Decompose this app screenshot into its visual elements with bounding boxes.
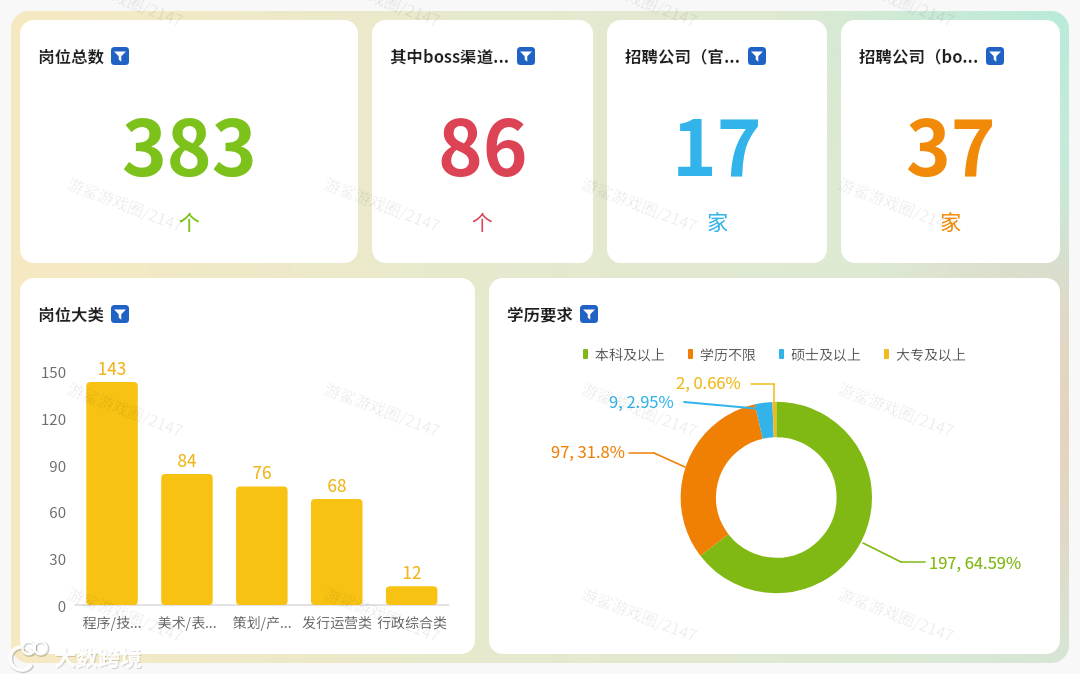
staticText: 86 [438, 88, 528, 198]
button[interactable]: 大专及以上 [884, 344, 966, 364]
staticText: 策划/产... [218, 612, 306, 632]
staticText: 发行运营类 [293, 612, 381, 632]
staticText: 游鲨游戏圈/2147 [836, 376, 958, 441]
staticText: 游鲨游戏圈/2147 [322, 171, 444, 236]
button[interactable]: Filter [580, 305, 598, 323]
staticText: 游鲨游戏圈/2147 [579, 171, 701, 236]
staticText: 美术/表... [143, 612, 231, 632]
staticText: 学历不限 [700, 344, 756, 364]
staticText: 150 [20, 361, 66, 383]
staticText: 17 [672, 88, 762, 198]
staticText: 家 [707, 206, 728, 236]
staticText: 37 [906, 88, 996, 198]
button[interactable]: 学历不限 [688, 344, 756, 364]
button[interactable]: 招聘公司（bo... [841, 20, 1060, 263]
staticText: 个 [179, 206, 200, 236]
staticText: 60 [20, 501, 66, 523]
button[interactable]: 本科及以上 [583, 344, 665, 364]
staticText: 硕士及以上 [791, 344, 861, 364]
staticText: 30 [20, 548, 66, 570]
staticText: 游鲨游戏圈/2147 [579, 376, 701, 441]
staticText: 游鲨游戏圈/2147 [65, 0, 187, 31]
staticText: 游鲨游戏圈/2147 [65, 581, 187, 646]
staticText: 97, 31.8% [551, 439, 625, 463]
staticText: 游鲨游戏圈/2147 [836, 171, 958, 236]
staticText: 岗位总数 [38, 44, 104, 68]
staticText: 程序/技... [68, 612, 156, 632]
button[interactable]: 岗位总数 [38, 44, 129, 68]
staticText: 招聘公司（官... [625, 44, 741, 68]
staticText: 2, 0.66% [676, 370, 741, 394]
button[interactable]: 招聘公司（官... [607, 20, 827, 263]
button[interactable]: Filter [111, 47, 129, 65]
staticText: 游鲨游戏圈/2147 [322, 581, 444, 646]
staticText: 12 [372, 559, 452, 584]
staticText: 学历要求 [507, 302, 573, 326]
button[interactable]: 学历要求 [507, 302, 598, 326]
button[interactable]: 硕士及以上 [779, 344, 861, 364]
button[interactable]: Filter [986, 47, 1004, 65]
button[interactable]: 150 [20, 278, 475, 654]
staticText: 84 [147, 447, 227, 472]
staticText: 其中boss渠道... [390, 44, 510, 68]
staticText: 大专及以上 [896, 344, 966, 364]
staticText: 游鲨游戏圈/2147 [322, 376, 444, 441]
staticText: 9, 2.95% [609, 389, 674, 413]
button[interactable]: 其中boss渠道... [372, 20, 593, 263]
staticText: 游鲨游戏圈/2147 [579, 581, 701, 646]
button[interactable]: 招聘公司（官... [625, 44, 766, 68]
staticText: 游鲨游戏圈/2147 [65, 376, 187, 441]
staticText: 游鲨游戏圈/2147 [836, 0, 958, 31]
button[interactable]: Filter [748, 47, 766, 65]
staticText: 游鲨游戏圈/2147 [322, 0, 444, 31]
button[interactable]: 其中boss渠道... [390, 44, 535, 68]
staticText: 岗位大类 [38, 302, 104, 326]
staticText: 家 [940, 206, 961, 236]
staticText: 大数跨境 [55, 641, 144, 673]
staticText: 行政综合类 [368, 612, 456, 632]
button[interactable]: 岗位总数 [20, 20, 358, 263]
staticText: 游鲨游戏圈/2147 [836, 581, 958, 646]
staticText: 76 [222, 459, 302, 484]
staticText: 游鲨游戏圈/2147 [65, 171, 187, 236]
staticText: 383 [122, 88, 257, 198]
staticText: 90 [20, 455, 66, 477]
staticText: 120 [20, 408, 66, 430]
button[interactable]: Filter [517, 47, 535, 65]
staticText: 个 [472, 206, 493, 236]
staticText: 197, 64.59% [929, 550, 1022, 574]
staticText: 招聘公司（bo... [859, 44, 979, 68]
staticText: 大数跨境 [54, 640, 143, 672]
button[interactable]: 本科及以上 [489, 278, 1060, 654]
staticText: 68 [297, 472, 377, 497]
button[interactable]: 招聘公司（bo... [859, 44, 1004, 68]
staticText: 0 [20, 595, 66, 617]
staticText: 本科及以上 [595, 344, 665, 364]
button[interactable]: Filter [111, 305, 129, 323]
button[interactable]: 岗位大类 [38, 302, 129, 326]
staticText: 游鲨游戏圈/2147 [579, 0, 701, 31]
staticText: 143 [72, 355, 152, 380]
